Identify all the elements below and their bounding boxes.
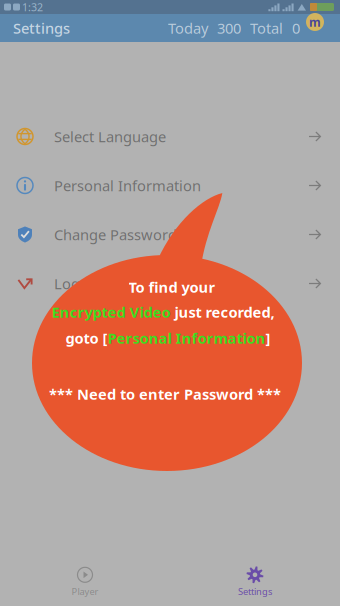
staticText: Personal Information [54,176,201,195]
button[interactable]: Coins [302,9,328,35]
button[interactable]: Select Language [0,112,340,161]
staticText: Player [71,585,98,598]
staticText: Encrypted Video [51,302,170,322]
staticText: *** Need to enter Password *** [49,384,281,404]
staticText: just recorded, [170,302,274,322]
staticText: Logout [54,274,103,293]
staticText: Today [168,18,208,38]
staticText: Settings [13,18,70,38]
staticText: m [309,14,321,30]
button[interactable]: Settings [170,560,340,604]
staticText: Personal Information [107,328,265,348]
button[interactable]: Change Password [0,210,340,259]
button[interactable]: Player [0,560,170,604]
staticText: 300 [217,18,241,38]
staticText: 1:32 [22,0,43,14]
staticText: 0 [292,18,300,38]
button[interactable]: Personal Information [0,161,340,210]
staticText: ] [265,328,270,348]
staticText: To find your [128,277,215,297]
button[interactable]: Logout [0,259,340,308]
staticText: Select Language [54,127,166,146]
staticText: Change Password [54,225,177,244]
staticText: Total [250,18,283,38]
staticText: goto [ [65,328,107,348]
staticText: Settings [238,585,272,598]
